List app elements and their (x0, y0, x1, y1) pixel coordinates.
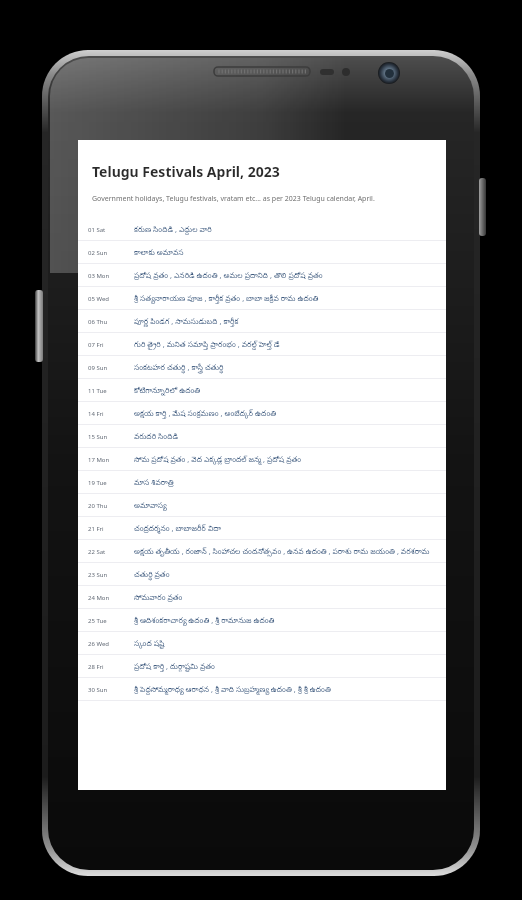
staticText: వరుదరి సిందిడి (134, 431, 178, 443)
staticText: అక్షయ కార్తి , మేష సంక్రమణం , అంబేద్కర్ … (134, 408, 277, 420)
staticText: సోమవారం వ్రతం (134, 592, 183, 604)
staticText: Government holidays, Telugu festivals, v… (92, 194, 375, 204)
staticText: 28 Fri (88, 663, 122, 671)
staticText: పూర్ణ పిండగ , సామసుడుబది , కార్తీక (134, 316, 239, 328)
staticText: 01 Sat (88, 226, 122, 234)
staticText: 20 Thu (88, 502, 122, 510)
staticText: 07 Fri (88, 341, 122, 349)
staticText: 06 Thu (88, 318, 122, 326)
staticText: Telugu Festivals April, 2023 (92, 162, 280, 181)
staticText: 24 Mon (88, 594, 122, 602)
button[interactable]: 07 Fri (78, 333, 446, 356)
staticText: 17 Mon (88, 456, 122, 464)
staticText: 15 Sun (88, 433, 122, 441)
button[interactable]: 30 Sun (78, 678, 446, 701)
staticText: 14 Fri (88, 410, 122, 418)
staticText: శ్రీ సత్యనారాయణ పూజ , కార్తీక వ్రతం , బా… (134, 293, 319, 305)
staticText: స్కంద షష్టి (134, 638, 165, 650)
staticText: 25 Tue (88, 617, 122, 625)
button[interactable]: 20 Thu (78, 494, 446, 517)
staticText: 23 Sun (88, 571, 122, 579)
button[interactable]: 26 Wed (78, 632, 446, 655)
button[interactable]: 06 Thu (78, 310, 446, 333)
button[interactable]: 25 Tue (78, 609, 446, 632)
staticText: చతుర్థి వ్రతం (134, 569, 170, 581)
button[interactable]: 19 Tue (78, 471, 446, 494)
button[interactable]: 28 Fri (78, 655, 446, 678)
staticText: కరుణ సిందిడి , ఎద్దుల వారి (134, 224, 212, 236)
staticText: 09 Sun (88, 364, 122, 372)
staticText: ప్రదోష వ్రతం , ఎనరిడి ఉదంతి , అమల ప్రదాన… (134, 270, 323, 282)
staticText: 21 Fri (88, 525, 122, 533)
button[interactable]: 17 Mon (78, 448, 446, 471)
staticText: 26 Wed (88, 640, 122, 648)
button[interactable]: 03 Mon (78, 264, 446, 287)
staticText: 05 Wed (88, 295, 122, 303)
staticText: శ్రీ పెద్దసోమ్మరాధ్య ఆరాధన , శ్రీ వాది స… (134, 684, 331, 696)
button[interactable]: 21 Fri (78, 517, 446, 540)
button[interactable]: 23 Sun (78, 563, 446, 586)
staticText: అమావాస్య (134, 501, 167, 511)
staticText: శ్రీ ఆదిశంకరాచార్య ఉదంతి , శ్రీ రామానుజ … (134, 615, 275, 627)
staticText: 22 Sat (88, 548, 122, 556)
staticText: సోమ ప్రదోష వ్రతం , వెద ఎక్కడ్ల బ్రాందల్ … (134, 454, 302, 466)
button[interactable]: 09 Sun (78, 356, 446, 379)
button[interactable]: 15 Sun (78, 425, 446, 448)
staticText: ప్రదోష కార్తి , దుర్గాష్టమి వ్రతం (134, 661, 215, 673)
staticText: మాస శివరాత్రి (134, 477, 174, 489)
button[interactable]: 05 Wed (78, 287, 446, 310)
staticText: గురి త్రైరి , మనిత సమాప్తి ప్రారంభం , వర… (134, 339, 280, 351)
staticText: 19 Tue (88, 479, 122, 487)
staticText: చంద్రదర్శనం , బాబాజరీర్ విదా (134, 523, 222, 535)
button[interactable]: 24 Mon (78, 586, 446, 609)
staticText: 02 Sun (88, 249, 122, 257)
staticText: అక్షయ తృతీయ , రంజాన్ , సింహాచల చందనోత్సవ… (134, 546, 442, 558)
button[interactable]: 02 Sun (78, 241, 446, 264)
staticText: సంకటహర చతుర్థి , కాస్త్రీ చతుర్థి (134, 362, 224, 374)
staticText: కాలాకు అమావస (134, 247, 184, 259)
staticText: 03 Mon (88, 272, 122, 280)
button[interactable]: 14 Fri (78, 402, 446, 425)
button[interactable]: 22 Sat (78, 540, 446, 563)
button[interactable]: 11 Tue (78, 379, 446, 402)
staticText: 30 Sun (88, 686, 122, 694)
staticText: కోటిగాన్నూరిలో ఉదంతి (134, 385, 201, 397)
staticText: 11 Tue (88, 387, 122, 395)
button[interactable]: 01 Sat (78, 218, 446, 241)
